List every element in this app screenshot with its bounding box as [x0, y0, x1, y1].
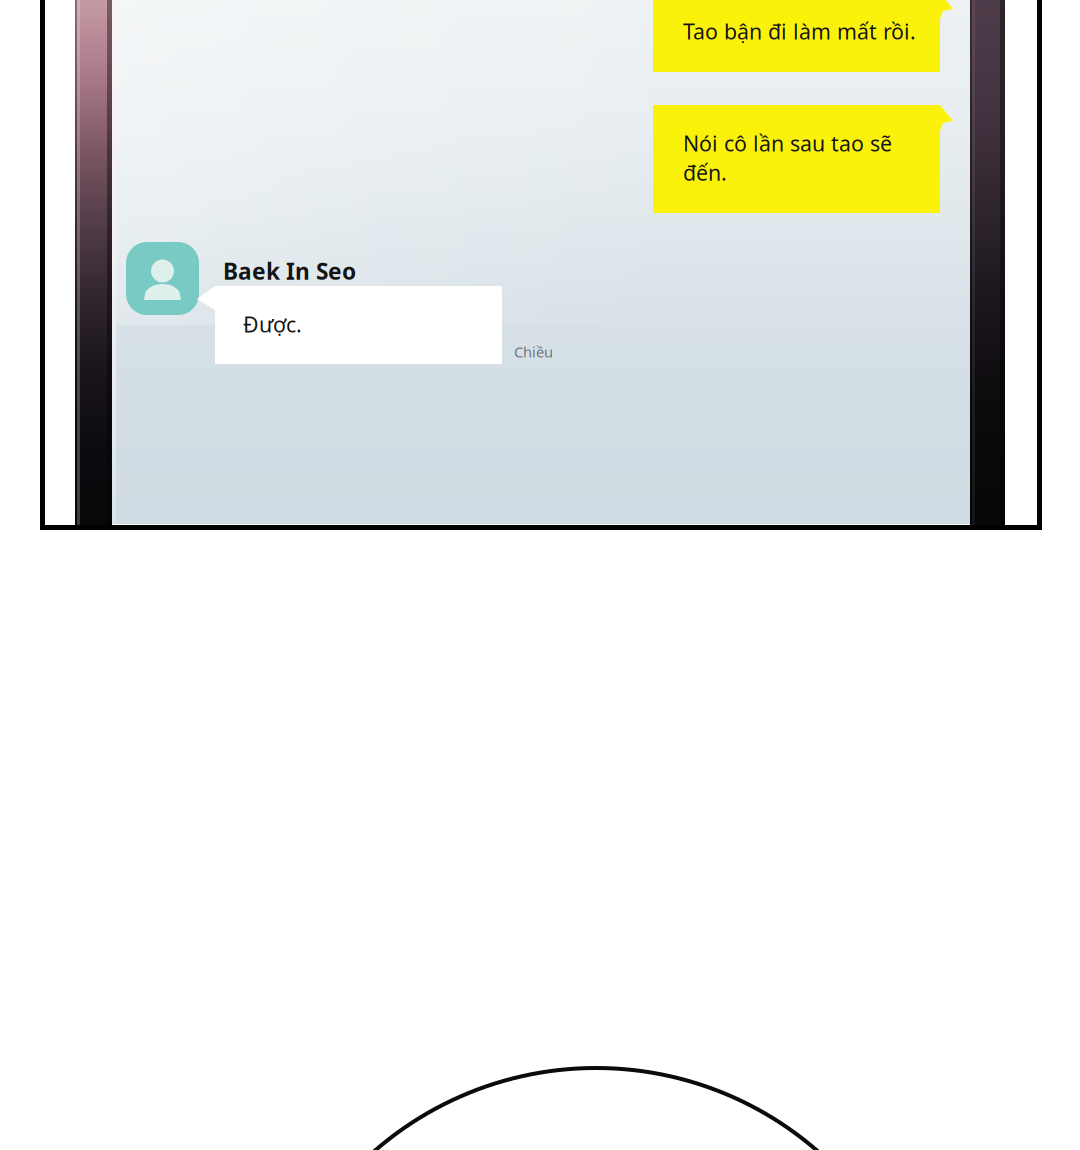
- staticText: Baek In Seo: [223, 256, 356, 286]
- button[interactable]: Nói cô lần sau tao sẽ: [683, 129, 892, 187]
- button[interactable]: Baek In Seo profile photo: [126, 242, 199, 315]
- staticText: Nói cô lần sau tao sẽ: [683, 129, 892, 157]
- button[interactable]: Tao bận đi làm mất rồi.: [683, 17, 916, 45]
- button[interactable]: Baek In Seo: [223, 256, 356, 286]
- staticText: đến.: [683, 158, 727, 187]
- staticText: Tao bận đi làm mất rồi.: [683, 17, 916, 45]
- staticText: Được.: [243, 310, 302, 338]
- staticText: Chiều: [514, 342, 553, 361]
- button[interactable]: Được.: [243, 310, 302, 338]
